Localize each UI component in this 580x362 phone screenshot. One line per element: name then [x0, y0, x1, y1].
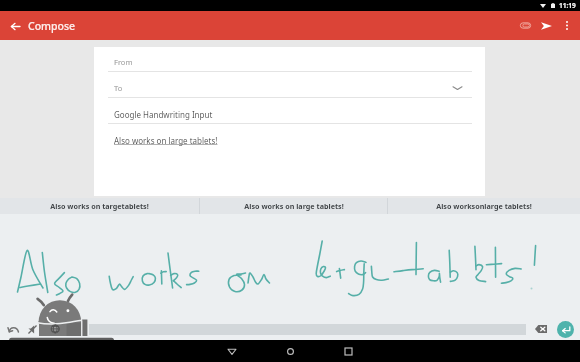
button[interactable]: Google Handwriting Input: [94, 105, 485, 124]
button[interactable]: Sound off: [25, 322, 40, 337]
button[interactable]: Home: [276, 340, 304, 362]
staticText: Also worksonlarge tablets!: [436, 201, 532, 211]
button[interactable]: Enter: [557, 321, 574, 338]
button[interactable]: Also works on large tablets!: [200, 198, 387, 214]
button[interactable]: Undo: [4, 320, 22, 338]
staticText: From: [114, 57, 133, 67]
button[interactable]: Attach file: [515, 15, 536, 36]
button[interactable]: Also works on large tablets!: [94, 130, 485, 150]
button[interactable]: Recent apps: [334, 340, 362, 362]
button[interactable]: Also works on targetablets!: [0, 198, 199, 214]
button[interactable]: Navigate up: [5, 16, 25, 36]
staticText: Compose: [28, 19, 76, 33]
button[interactable]: Back: [218, 340, 246, 362]
button[interactable]: Send: [536, 15, 557, 36]
staticText: To: [114, 83, 123, 93]
button[interactable]: Backspace: [533, 321, 549, 337]
staticText: Also works on targetablets!: [50, 201, 149, 211]
staticText: Also works on large tablets!: [114, 135, 218, 146]
staticText: 11:19: [559, 1, 576, 10]
button[interactable]: To: [94, 78, 485, 98]
staticText: Google Handwriting Input: [114, 109, 213, 120]
button[interactable]: Also worksonlarge tablets!: [388, 198, 580, 214]
staticText: Also works on large tablets!: [244, 201, 344, 211]
button[interactable]: From: [94, 51, 485, 72]
button[interactable]: Compose: [28, 15, 88, 37]
button[interactable]: More options: [557, 16, 576, 35]
